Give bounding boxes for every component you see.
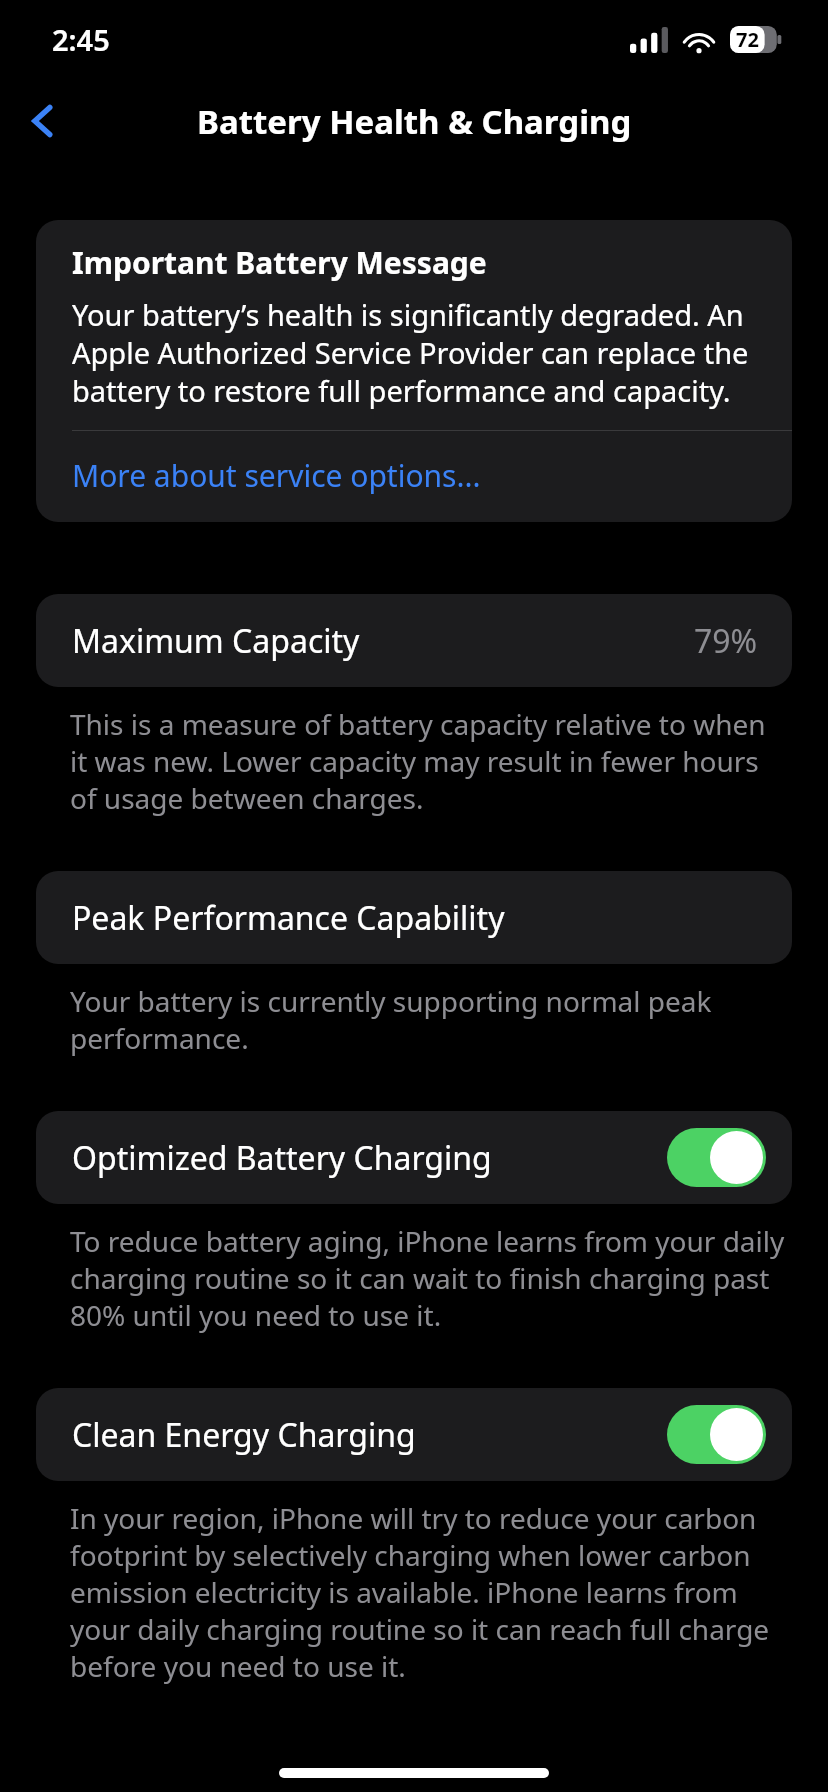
staticText: In your region, iPhone will try to reduc… — [70, 1499, 788, 1685]
staticText: Your battery is currently supporting nor… — [70, 982, 788, 1057]
staticText: Maximum Capacity — [72, 619, 360, 663]
staticText: To reduce battery aging, iPhone learns f… — [70, 1222, 788, 1334]
button[interactable]: Maximum Capacity — [36, 594, 792, 687]
staticText: 2:45 — [52, 20, 110, 59]
staticText: Peak Performance Capability — [72, 896, 505, 940]
staticText: More about service options... — [72, 455, 481, 496]
staticText: This is a measure of battery capacity re… — [70, 705, 788, 817]
button[interactable]: Peak Performance Capability — [36, 871, 792, 964]
button[interactable]: More about service options... — [36, 431, 792, 522]
button[interactable]: Clean Energy Charging — [36, 1388, 792, 1481]
staticText: Battery Health & Charging — [197, 99, 632, 144]
staticText: 72 — [736, 26, 759, 53]
button[interactable]: Back — [12, 90, 74, 152]
button[interactable]: Clean Energy Charging toggle — [667, 1405, 766, 1464]
staticText: Important Battery Message — [72, 242, 487, 283]
staticText: 79% — [694, 619, 758, 663]
staticText: Clean Energy Charging — [72, 1413, 416, 1457]
staticText: Optimized Battery Charging — [72, 1136, 492, 1180]
button[interactable]: Optimized Battery Charging toggle — [667, 1128, 766, 1187]
button[interactable]: Optimized Battery Charging — [36, 1111, 792, 1204]
staticText: Your battery’s health is significantly d… — [72, 295, 764, 410]
